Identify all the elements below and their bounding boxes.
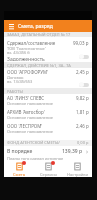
staticText: АРХИВ 'Автосбор' [7, 109, 76, 115]
staticText: Планы того сделан истинное [7, 156, 64, 160]
staticText: 139,39 р [62, 148, 83, 155]
staticText: Сдержал/составление разменной [7, 40, 73, 46]
button[interactable]: Настройки [63, 161, 92, 177]
button[interactable]: АО 'ЛИНЗ' СЛЕВС [4, 95, 92, 101]
staticText: 1,81 р [76, 109, 89, 115]
staticText: СДЕРЖАЛ, ДЕЙСТВИЕ №1, ЗА...ТА [7, 63, 71, 68]
button[interactable]: Toggle [79, 54, 89, 59]
staticText: ООО 'АГРОФОРУМ' [7, 69, 76, 75]
staticText: Сервисы [40, 172, 57, 177]
button[interactable]: АРХИВ 'Автосбор' [4, 109, 92, 115]
button[interactable]: Toggle [79, 82, 89, 87]
staticText: вх. 13/45/653 [7, 79, 33, 83]
staticText: РАБОТЫ [7, 89, 23, 94]
staticText: 2,45 р [76, 69, 89, 75]
staticText: Смета, разряд [18, 23, 53, 30]
staticText: Настройки [67, 172, 88, 177]
staticText: 99,03 р [73, 40, 89, 46]
staticText: ООО 'ЛЕСПРОМ' [7, 123, 76, 129]
button[interactable]: Смета [4, 161, 34, 177]
staticText: Основное направление [7, 115, 53, 119]
staticText: Задолженность [7, 56, 45, 61]
staticText: 0,00 р [77, 140, 89, 145]
staticText: ЗАКАЗ, ДЕТАЛЬНЫЙ ОТДЕЛ № 17 [7, 32, 71, 37]
button[interactable]: ООО 'АГРОФОРУМ' [4, 69, 92, 75]
staticText: Смета [13, 172, 25, 177]
staticText: ТОВ 'Транспортные' [7, 46, 46, 50]
staticText: вх. 43/456 б [7, 50, 30, 54]
staticText: В порядке [7, 148, 62, 155]
staticText: Договор [7, 75, 24, 79]
button[interactable]: В порядке [4, 148, 92, 155]
button[interactable]: Сдержал/составление разменной [4, 40, 92, 46]
staticText: ФОНД АГЕНТСКОЙ СМЕТЫ/ФИЛИАЛ [7, 140, 77, 146]
staticText: Основное направление [7, 101, 53, 105]
staticText: всю определенное б-в и корзина [7, 160, 72, 164]
staticText: АО 'ЛИНЗ' СЛЕВС [7, 95, 76, 101]
staticText: 9,82 р [76, 95, 89, 101]
button[interactable]: Menu [7, 22, 15, 30]
staticText: Основное направление [7, 129, 53, 133]
staticText: 2,46 р [76, 123, 89, 129]
button[interactable]: ООО 'ЛЕСПРОМ' [4, 123, 92, 129]
button[interactable]: Сервисы [34, 161, 63, 177]
